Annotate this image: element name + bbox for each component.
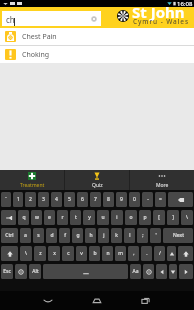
button[interactable]: Treatment (0, 170, 64, 190)
button[interactable]: f (59, 228, 70, 243)
button[interactable]: s (33, 228, 44, 243)
button[interactable]: Ctrl (1, 228, 18, 243)
button[interactable]: d (46, 228, 57, 243)
button[interactable]: a (20, 228, 31, 243)
button[interactable]: p (139, 210, 151, 225)
button[interactable]: ] (167, 210, 179, 225)
button[interactable] (15, 264, 27, 279)
button[interactable]: u (97, 210, 109, 225)
staticText: = (159, 196, 162, 203)
button[interactable]: q (18, 210, 29, 225)
button[interactable]: 7 (90, 192, 101, 207)
button[interactable]: l (124, 228, 135, 243)
button[interactable]: i (111, 210, 123, 225)
staticText: Cymru - Wales (133, 17, 190, 26)
staticText: u (101, 214, 105, 221)
button[interactable]: ' (150, 228, 161, 243)
button[interactable]: - (142, 192, 153, 207)
button[interactable]: w (31, 210, 42, 225)
button[interactable] (43, 264, 128, 279)
staticText: Next (173, 232, 184, 239)
staticText: 5 (68, 196, 71, 203)
button[interactable]: ch (2, 11, 101, 26)
button[interactable]: 6 (77, 192, 88, 207)
staticText: Treatment (20, 182, 45, 189)
button[interactable]: Back (24, 291, 72, 310)
button[interactable] (156, 264, 167, 279)
button[interactable]: j (98, 228, 109, 243)
staticText: i (116, 214, 118, 221)
button[interactable] (178, 246, 193, 261)
staticText: e (48, 214, 51, 221)
button[interactable]: o (125, 210, 137, 225)
button[interactable]: 8 (103, 192, 114, 207)
staticText: o (129, 214, 133, 221)
button[interactable]: , (128, 246, 139, 261)
button[interactable] (169, 264, 177, 279)
button[interactable]: 2 (25, 192, 36, 207)
button[interactable]: Choking (0, 46, 194, 63)
button[interactable]: \ (181, 210, 193, 225)
staticText: c (67, 250, 70, 257)
button[interactable]: \ (20, 246, 32, 261)
button[interactable]: e (44, 210, 55, 225)
staticText: d (50, 232, 54, 239)
button[interactable]: Quiz (65, 170, 129, 190)
button[interactable]: b (89, 246, 100, 261)
button[interactable]: Home (72, 291, 121, 310)
button[interactable]: Alt (29, 264, 41, 279)
button[interactable]: ` (1, 192, 11, 207)
staticText: . (146, 250, 148, 257)
button[interactable]: v (76, 246, 87, 261)
button[interactable]: St John (132, 7, 194, 28)
button[interactable]: n (102, 246, 113, 261)
button[interactable]: Recent apps (121, 291, 170, 310)
staticText: ; (142, 232, 144, 239)
button[interactable]: 5 (64, 192, 75, 207)
button[interactable]: 9 (116, 192, 127, 207)
staticText: y (88, 214, 91, 221)
staticText: m (118, 250, 123, 257)
button[interactable]: h (85, 228, 96, 243)
button[interactable]: r (57, 210, 68, 225)
button[interactable]: ; (137, 228, 148, 243)
button[interactable] (1, 246, 18, 261)
button[interactable]: 4 (51, 192, 62, 207)
staticText: \ (25, 250, 27, 257)
button[interactable]: z (34, 246, 46, 261)
staticText: a (24, 232, 27, 239)
button[interactable]: g (72, 228, 83, 243)
button[interactable]: . (141, 246, 152, 261)
staticText: 6 (81, 196, 84, 203)
button[interactable]: Next (163, 228, 193, 243)
staticText: ch (6, 14, 15, 25)
staticText: n (106, 250, 110, 257)
button[interactable] (143, 264, 154, 279)
button[interactable]: / (154, 246, 165, 261)
button[interactable]: 3 (38, 192, 49, 207)
button[interactable]: m (115, 246, 126, 261)
button[interactable]: x (48, 246, 60, 261)
button[interactable]: k (111, 228, 122, 243)
button[interactable]: c (62, 246, 74, 261)
button[interactable] (1, 210, 16, 225)
button[interactable]: = (155, 192, 166, 207)
button[interactable]: t (70, 210, 81, 225)
staticText: v (80, 250, 83, 257)
button[interactable]: Esc (1, 264, 13, 279)
button[interactable] (168, 192, 193, 207)
staticText: r (61, 214, 64, 221)
staticText: 3 (42, 196, 45, 203)
button[interactable]: Aa (130, 264, 141, 279)
button[interactable]: 1 (13, 192, 23, 207)
button[interactable]: y (83, 210, 95, 225)
button[interactable] (179, 264, 193, 279)
staticText: f (64, 232, 66, 239)
button[interactable]: [ (153, 210, 165, 225)
button[interactable] (167, 246, 176, 261)
button[interactable]: Chest Pain (0, 28, 194, 45)
button[interactable]: More (130, 170, 194, 190)
button[interactable]: 0 (129, 192, 140, 207)
staticText: h (89, 232, 93, 239)
staticText: l (129, 232, 131, 239)
